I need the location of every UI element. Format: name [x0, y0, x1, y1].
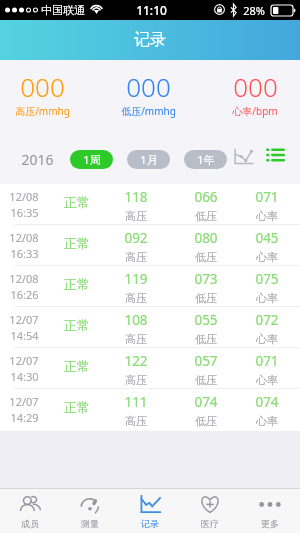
staticText: 000 [233, 69, 278, 104]
staticText: 057 [194, 352, 218, 370]
button[interactable]: 000 [0, 60, 92, 128]
staticText: 低压 [195, 414, 217, 428]
staticText: 低压 [195, 209, 217, 223]
staticText: 心率/bpm [232, 104, 278, 118]
button[interactable]: 医疗 [180, 489, 240, 533]
staticText: 更多 [261, 518, 279, 529]
staticText: 1年 [197, 152, 215, 167]
staticText: 092 [124, 229, 148, 247]
staticText: 心率 [256, 250, 278, 264]
staticText: 000 [20, 69, 65, 104]
button[interactable]: 更多 [240, 489, 300, 533]
button[interactable]: 12/08 [0, 184, 300, 225]
staticText: 正常 [64, 235, 90, 251]
staticText: 低压/mmhg [121, 104, 176, 118]
staticText: 11:10 [136, 2, 167, 18]
staticText: 16:35 [10, 205, 39, 220]
button[interactable]: 1年 [184, 150, 227, 169]
button[interactable]: 12/08 [0, 266, 300, 307]
staticText: 成员 [21, 518, 39, 529]
staticText: 12/07 [9, 312, 39, 327]
staticText: 心率 [256, 332, 278, 346]
staticText: 118 [124, 188, 148, 206]
staticText: 073 [194, 270, 218, 288]
staticText: 正常 [64, 194, 90, 210]
staticText: 心率 [256, 291, 278, 305]
staticText: 119 [124, 270, 148, 288]
staticText: 记录 [134, 30, 166, 50]
staticText: 中国联通 [41, 3, 85, 17]
button[interactable]: 测量 [60, 489, 120, 533]
staticText: 072 [255, 311, 279, 329]
staticText: 14:54 [10, 328, 39, 343]
staticText: 正常 [64, 358, 90, 374]
staticText: 12/07 [9, 394, 39, 409]
staticText: 12/07 [9, 353, 39, 368]
staticText: 高压/mmhg [15, 104, 70, 118]
staticText: 12/08 [9, 230, 39, 245]
button[interactable]: 成员 [0, 489, 60, 533]
staticText: 低压 [195, 332, 217, 346]
staticText: 高压 [125, 373, 147, 387]
staticText: 12/08 [9, 271, 39, 286]
button[interactable]: 000 [205, 60, 300, 128]
staticText: 心率 [256, 414, 278, 428]
staticText: 071 [255, 188, 279, 206]
staticText: 高压 [125, 250, 147, 264]
staticText: 高压 [125, 209, 147, 223]
staticText: 066 [194, 188, 218, 206]
staticText: 080 [194, 229, 218, 247]
staticText: 074 [194, 393, 218, 411]
staticText: 16:26 [10, 287, 39, 302]
staticText: 071 [255, 352, 279, 370]
button[interactable]: 000 [98, 60, 198, 128]
button[interactable]: 1月 [127, 150, 170, 169]
staticText: 医疗 [201, 518, 219, 529]
staticText: 正常 [64, 399, 90, 415]
button[interactable]: 12/07 [0, 389, 300, 430]
button[interactable]: 1周 [70, 150, 113, 169]
staticText: 1月 [140, 152, 158, 167]
staticText: 28% [243, 3, 265, 18]
staticText: 记录 [141, 518, 159, 529]
staticText: 高压 [125, 291, 147, 305]
button[interactable]: 12/08 [0, 225, 300, 266]
staticText: 高压 [125, 414, 147, 428]
staticText: 14:29 [10, 410, 39, 425]
staticText: 055 [194, 311, 218, 329]
staticText: 14:30 [10, 369, 39, 384]
button[interactable]: 图表视图 [231, 145, 255, 167]
staticText: 12/08 [9, 189, 39, 204]
staticText: 16:33 [10, 246, 39, 261]
staticText: 测量 [81, 518, 99, 529]
staticText: 正常 [64, 276, 90, 292]
staticText: 000 [126, 69, 171, 104]
button[interactable]: 12/07 [0, 307, 300, 348]
staticText: 122 [124, 352, 148, 370]
staticText: 心率 [256, 373, 278, 387]
staticText: 正常 [64, 317, 90, 333]
staticText: 1周 [83, 152, 101, 167]
staticText: 108 [124, 311, 148, 329]
staticText: 高压 [125, 332, 147, 346]
staticText: 2016 [21, 150, 54, 169]
staticText: 低压 [195, 373, 217, 387]
staticText: 045 [255, 229, 279, 247]
staticText: 低压 [195, 250, 217, 264]
button[interactable]: 记录 [120, 489, 180, 533]
staticText: 075 [255, 270, 279, 288]
button[interactable]: 12/07 [0, 348, 300, 389]
button[interactable]: 列表视图 [263, 144, 287, 166]
staticText: 074 [255, 393, 279, 411]
staticText: 心率 [256, 209, 278, 223]
staticText: 低压 [195, 291, 217, 305]
staticText: 111 [124, 393, 148, 411]
